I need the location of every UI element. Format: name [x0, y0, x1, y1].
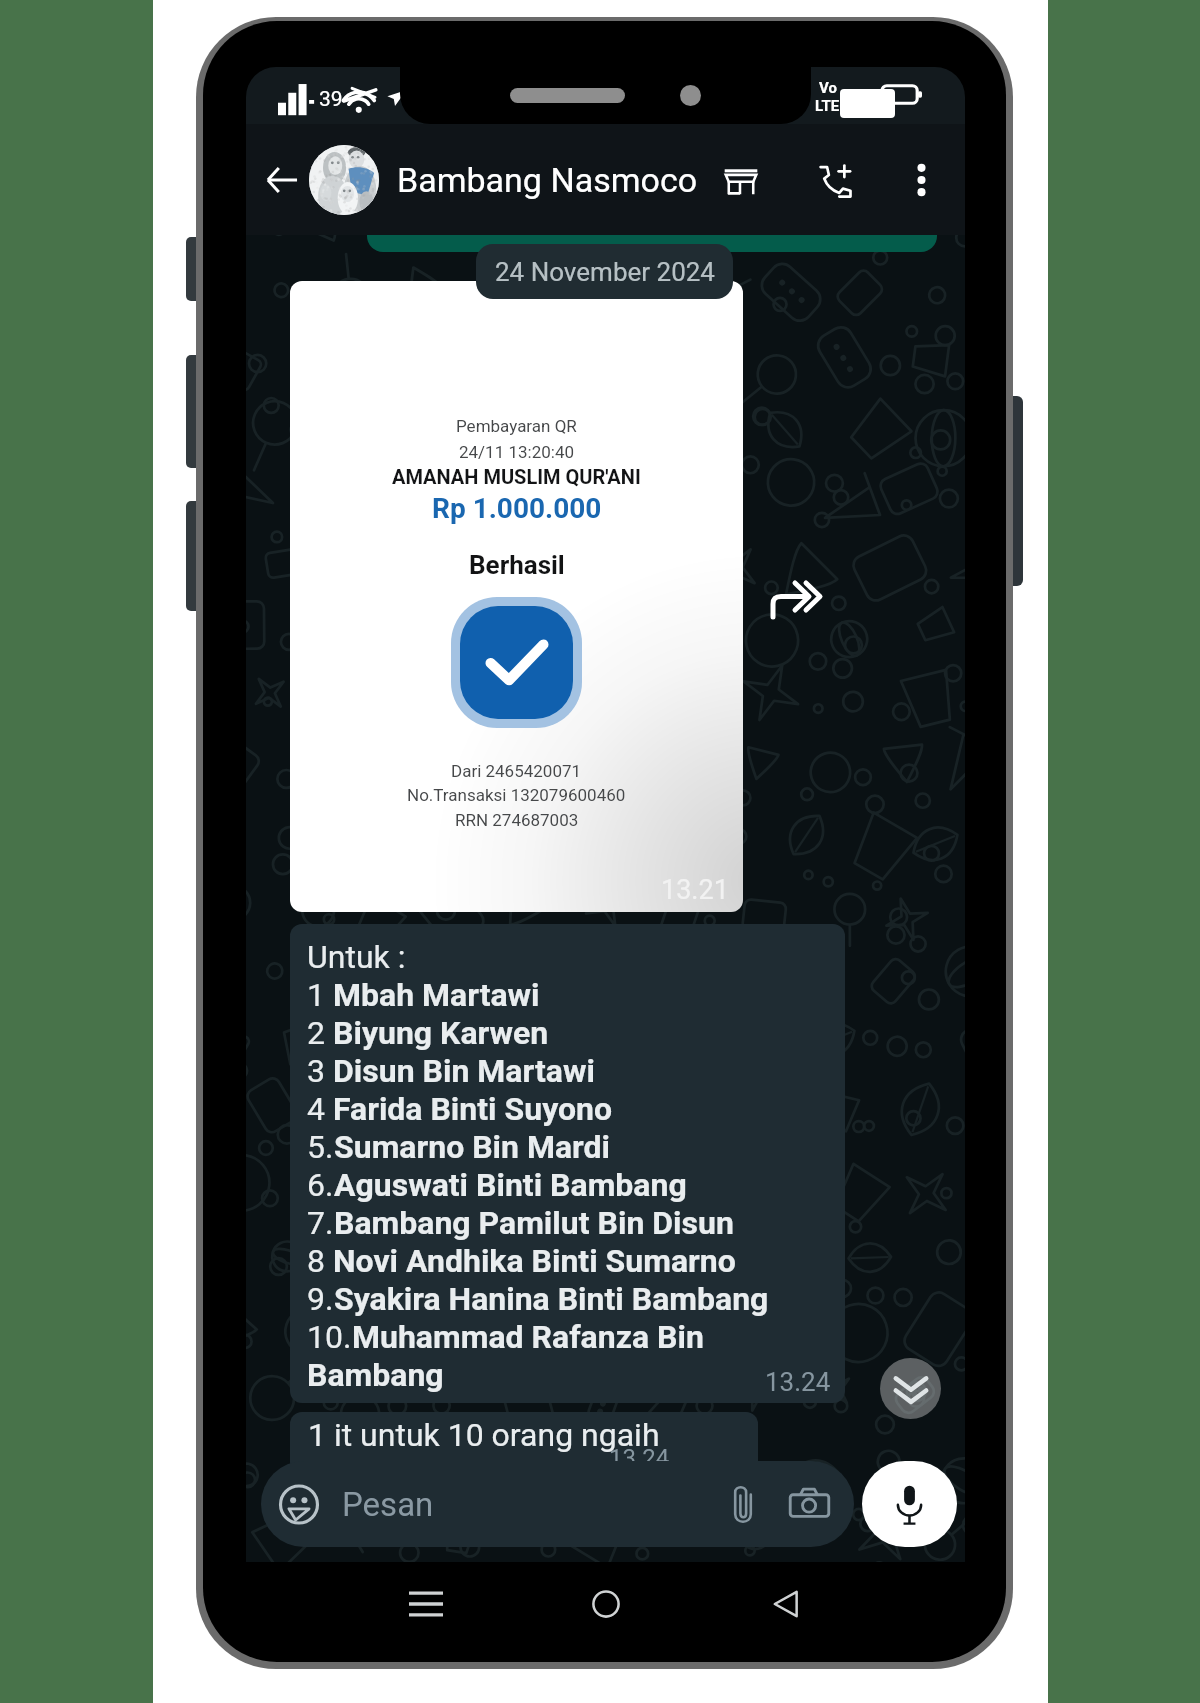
staticText: No.Transaksi 132079600460: [407, 785, 626, 805]
button[interactable]: Pesan: [261, 1461, 854, 1547]
button[interactable]: Pembayaran QR: [290, 281, 743, 912]
button[interactable]: More options: [899, 158, 943, 202]
staticText: Mbah Martawi: [333, 976, 540, 1014]
staticText: Biyung Karwen: [333, 1014, 549, 1052]
staticText: Disun Bin Martawi: [333, 1052, 595, 1090]
staticText: Pembayaran QR: [456, 416, 577, 436]
button[interactable]: 24 November 2024: [476, 244, 733, 299]
staticText: 13.24: [609, 1444, 670, 1472]
staticText: Untuk :: [307, 938, 406, 976]
staticText: 10.: [307, 1318, 352, 1356]
staticText: 1 it untuk 10 orang ngaih: [308, 1416, 660, 1454]
button[interactable]: Call: [807, 152, 863, 208]
staticText: 13.24: [765, 1367, 831, 1397]
staticText: 4: [307, 1090, 333, 1128]
staticText: Bambang: [307, 1356, 444, 1394]
button[interactable]: Forward: [763, 565, 829, 631]
staticText: 13.21: [661, 874, 729, 906]
button[interactable]: Business profile: [713, 152, 769, 208]
staticText: 6.: [307, 1166, 334, 1204]
staticText: Bambang Nasmoco: [397, 160, 698, 200]
button[interactable]: Back: [755, 1573, 817, 1635]
staticText: Muhammad Rafanza Bin: [352, 1318, 704, 1356]
staticText: Berhasil: [469, 550, 565, 580]
staticText: 1: [307, 976, 333, 1014]
staticText: Vo: [819, 79, 837, 97]
staticText: Syakira Hanina Binti Bambang: [334, 1280, 769, 1318]
staticText: Bambang Pamilut Bin Disun: [334, 1204, 734, 1242]
staticText: Rp 1.000.000: [432, 492, 602, 525]
staticText: Pesan: [342, 1485, 434, 1524]
staticText: 7.: [307, 1204, 334, 1242]
button[interactable]: Untuk :: [290, 924, 845, 1403]
staticText: Novi Andhika Binti Sumarno: [333, 1242, 736, 1280]
staticText: Sumarno Bin Mardi: [334, 1128, 610, 1166]
button[interactable]: Profile photo: [309, 145, 379, 215]
staticText: 5.: [307, 1128, 334, 1166]
button[interactable]: Scroll to bottom: [880, 1358, 941, 1419]
staticText: Aguswati Binti Bambang: [334, 1166, 687, 1204]
staticText: 9.: [307, 1280, 334, 1318]
staticText: Farida Binti Suyono: [333, 1090, 613, 1128]
staticText: 3: [307, 1052, 333, 1090]
button[interactable]: Home: [575, 1573, 637, 1635]
staticText: LTE: [815, 97, 840, 115]
staticText: Dari 2465420071: [451, 761, 582, 781]
staticText: RRN 274687003: [455, 810, 579, 830]
button[interactable]: Back: [256, 154, 308, 206]
button[interactable]: Recent apps: [395, 1573, 457, 1635]
button[interactable]: Record voice message: [862, 1461, 957, 1547]
staticText: 39: [319, 87, 343, 112]
staticText: 24/11 13:20:40: [459, 442, 575, 462]
staticText: 2: [307, 1014, 333, 1052]
staticText: 24 November 2024: [495, 257, 715, 287]
staticText: AMANAH MUSLIM QUR'ANI: [392, 465, 641, 488]
staticText: 8: [307, 1242, 333, 1280]
